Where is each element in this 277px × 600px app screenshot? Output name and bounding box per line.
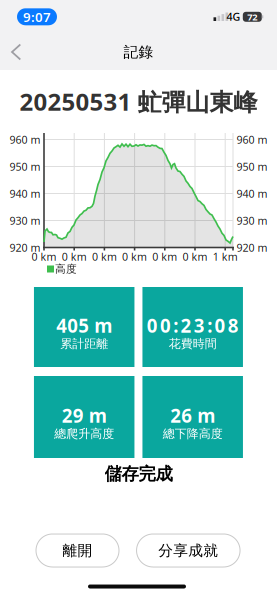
staticText: 記錄 — [123, 43, 153, 61]
staticText: 0 km — [62, 249, 87, 264]
staticText: 花費時間 — [169, 336, 217, 351]
staticText: 72 — [247, 11, 257, 23]
staticText: 920 m — [9, 240, 40, 255]
button[interactable] — [8, 41, 30, 63]
staticText: 0 km — [31, 249, 56, 264]
staticText: 930 m — [9, 213, 40, 228]
staticText: 930 m — [236, 213, 267, 228]
staticText: 940 m — [236, 186, 267, 201]
staticText: 960 m — [9, 132, 40, 147]
button[interactable]: 分享成就 — [137, 534, 240, 567]
staticText: 29 m — [62, 403, 107, 428]
staticText: 0 km — [92, 249, 117, 264]
staticText: 儲存完成 — [104, 463, 172, 485]
staticText: 總爬升高度 — [54, 426, 114, 441]
staticText: 960 m — [236, 132, 267, 147]
staticText: 0 km — [152, 249, 177, 264]
staticText: 總下降高度 — [163, 426, 223, 441]
staticText: 4G — [226, 10, 240, 24]
staticText: 26 m — [170, 403, 215, 428]
staticText: 920 m — [236, 240, 267, 255]
staticText: 0 km — [122, 249, 147, 264]
staticText: 9:07 — [23, 8, 51, 26]
staticText: 1 km — [213, 249, 238, 264]
staticText: 950 m — [9, 159, 40, 174]
staticText: 940 m — [9, 186, 40, 201]
button[interactable]: 離開 — [36, 534, 119, 567]
staticText: 950 m — [236, 159, 267, 174]
staticText: 高度 — [55, 262, 77, 275]
staticText: 離開 — [62, 541, 92, 559]
staticText: 0 km — [182, 249, 207, 264]
staticText: 405 m — [56, 313, 112, 338]
staticText: 分享成就 — [158, 541, 218, 559]
staticText: 00:23:08 — [147, 313, 239, 338]
staticText: 累計距離 — [60, 336, 108, 351]
staticText: 20250531 虻彈山東峰 — [19, 86, 257, 117]
